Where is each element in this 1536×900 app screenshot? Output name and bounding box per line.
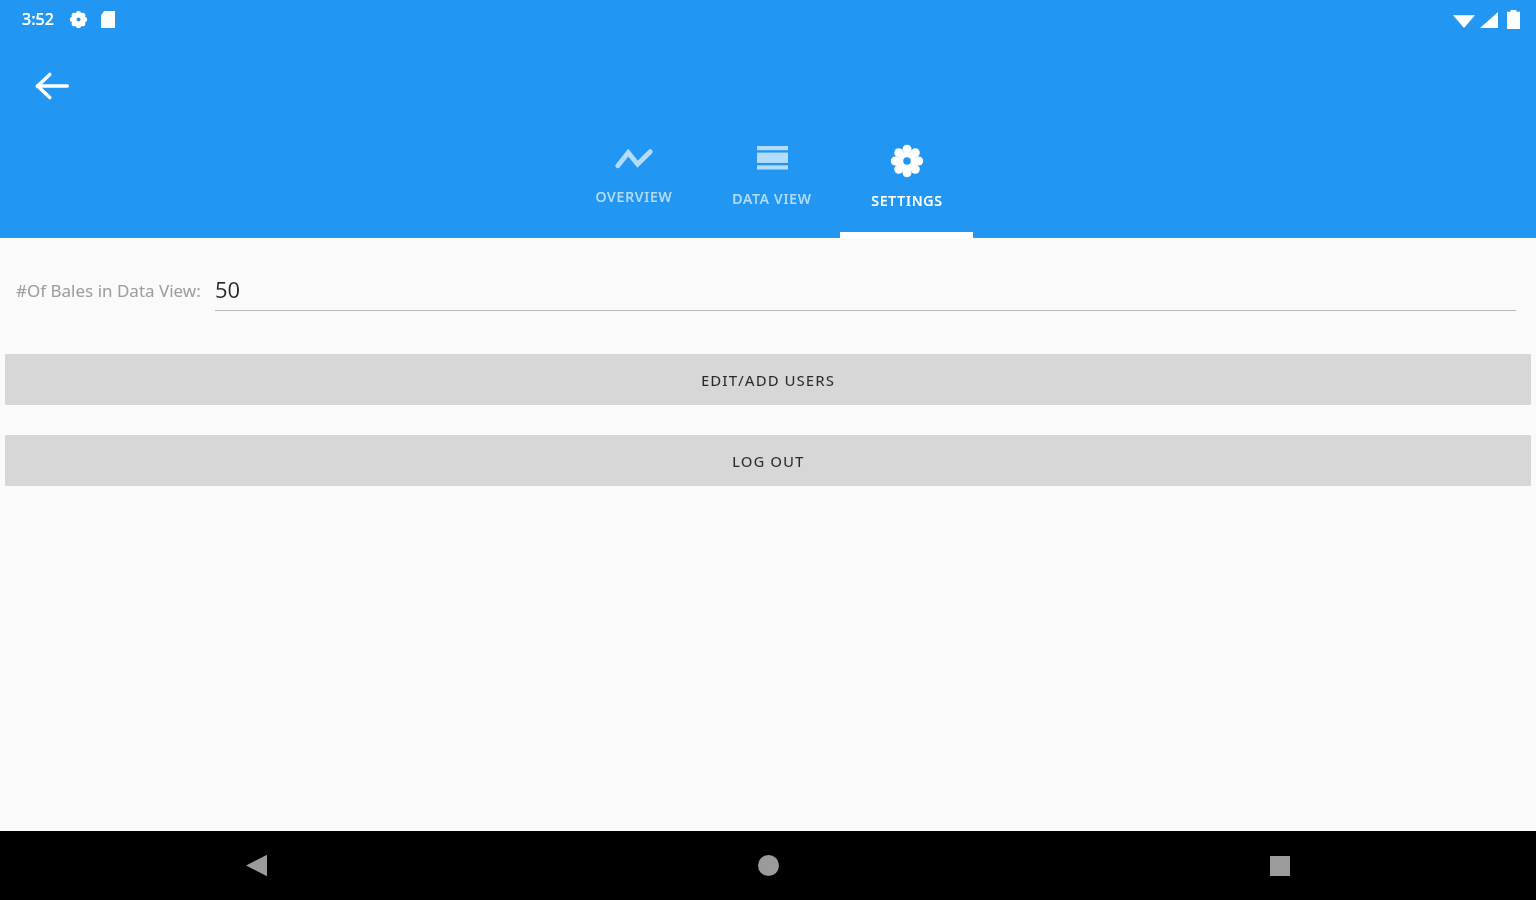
staticText: 3:52: [22, 8, 54, 30]
staticText: SETTINGS: [871, 191, 943, 210]
button[interactable]: Recent apps: [1024, 831, 1536, 900]
button[interactable]: OVERVIEW: [564, 133, 704, 238]
staticText: LOG OUT: [732, 451, 805, 471]
staticText: OVERVIEW: [595, 187, 673, 206]
button[interactable]: Back: [16, 50, 88, 122]
staticText: 50: [215, 274, 241, 304]
button[interactable]: SETTINGS: [840, 133, 973, 238]
button[interactable]: Back: [0, 831, 512, 900]
staticText: EDIT/ADD USERS: [701, 370, 835, 390]
button[interactable]: LOG OUT: [5, 435, 1531, 486]
button[interactable]: EDIT/ADD USERS: [5, 354, 1531, 405]
button[interactable]: Home: [512, 831, 1024, 900]
staticText: DATA VIEW: [732, 189, 812, 208]
staticText: #Of Bales in Data View:: [16, 279, 201, 302]
button[interactable]: DATA VIEW: [704, 133, 840, 238]
